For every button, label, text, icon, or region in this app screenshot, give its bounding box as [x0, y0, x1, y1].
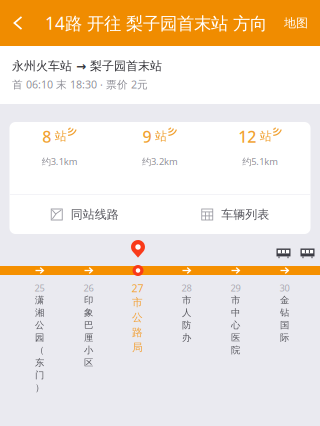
button[interactable]: 地图 [272, 0, 320, 46]
staticText: 中 [231, 307, 240, 318]
staticText: 区 [84, 357, 93, 368]
staticText: 市 [231, 294, 240, 306]
staticText: 14路 开往 梨子园首末站 方向 [45, 11, 267, 34]
staticText: 湘 [35, 307, 44, 318]
staticText: 心 [231, 319, 240, 331]
staticText: 约3.2km [142, 155, 178, 168]
staticText: 园 [35, 332, 44, 343]
staticText: 25 [34, 282, 44, 294]
button[interactable]: 返回 [0, 0, 36, 46]
staticText: 站 [260, 129, 272, 144]
staticText: 永州火车站 → 梨子园首末站 [12, 58, 162, 73]
staticText: 办 [182, 332, 191, 343]
staticText: 局 [132, 341, 143, 354]
staticText: 际 [280, 332, 289, 343]
staticText: 公 [132, 311, 143, 324]
staticText: 首 06:10 末 18:30 · 票价 2元 [12, 77, 148, 91]
staticText: 潇 [35, 294, 44, 306]
staticText: 12 [238, 126, 256, 147]
staticText: ） [35, 382, 44, 393]
staticText: 防 [182, 319, 191, 331]
staticText: 印 [84, 294, 93, 306]
staticText: 象 [84, 307, 93, 318]
staticText: 同站线路 [71, 207, 119, 222]
staticText: 院 [231, 344, 240, 356]
staticText: 门 [35, 369, 44, 381]
staticText: 30 [279, 282, 289, 294]
staticText: 路 [132, 326, 143, 339]
staticText: 站 [155, 129, 167, 144]
staticText: （ [35, 344, 44, 356]
staticText: 医 [231, 332, 240, 343]
staticText: 车辆列表 [221, 207, 269, 222]
staticText: 市 [132, 296, 143, 309]
staticText: 厘 [84, 332, 93, 343]
button[interactable]: 车辆列表 [160, 195, 310, 234]
staticText: 东 [35, 357, 44, 368]
staticText: 巴 [84, 319, 93, 331]
staticText: 钻 [280, 307, 289, 318]
staticText: 28 [181, 282, 191, 294]
staticText: 地图 [284, 16, 308, 30]
staticText: 29 [230, 282, 240, 294]
staticText: 站 [55, 129, 67, 144]
staticText: 人 [182, 307, 191, 318]
staticText: 国 [280, 319, 289, 331]
staticText: 9 [142, 126, 151, 147]
staticText: 8 [42, 126, 51, 147]
button[interactable]: 同站线路 [9, 195, 160, 234]
staticText: 27 [131, 281, 143, 295]
staticText: 26 [83, 282, 93, 294]
staticText: 公 [35, 319, 44, 331]
staticText: 市 [182, 294, 191, 306]
staticText: 约5.1km [242, 155, 278, 168]
staticText: 小 [84, 344, 93, 356]
staticText: 约3.1km [42, 155, 78, 168]
staticText: 金 [280, 294, 289, 306]
